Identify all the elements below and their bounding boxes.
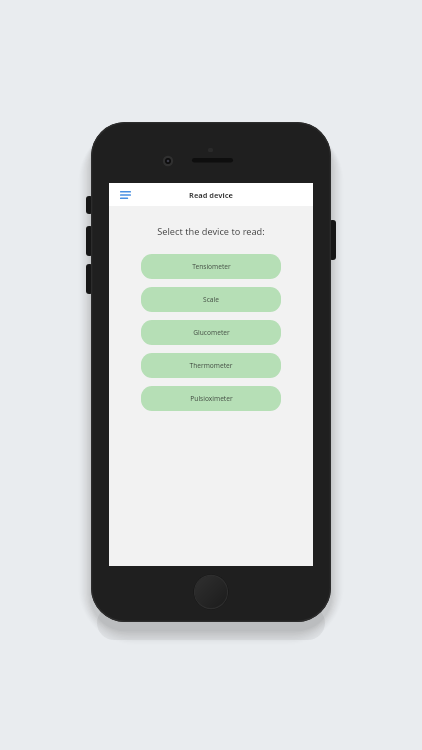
button[interactable]: Pulsioximeter bbox=[141, 386, 281, 411]
staticText: Read device bbox=[189, 190, 233, 200]
button[interactable]: Thermometer bbox=[141, 353, 281, 378]
button[interactable]: Scale bbox=[141, 287, 281, 312]
button[interactable]: Glucometer bbox=[141, 320, 281, 345]
staticText: Select the device to read: bbox=[157, 225, 265, 238]
staticText: Scale bbox=[203, 295, 219, 304]
staticText: Pulsioximeter bbox=[190, 394, 233, 403]
staticText: Thermometer bbox=[189, 361, 233, 370]
button[interactable]: Open navigation menu bbox=[117, 187, 133, 203]
staticText: Tensiometer bbox=[192, 262, 231, 271]
button[interactable]: Tensiometer bbox=[141, 254, 281, 279]
staticText: Glucometer bbox=[193, 328, 230, 337]
